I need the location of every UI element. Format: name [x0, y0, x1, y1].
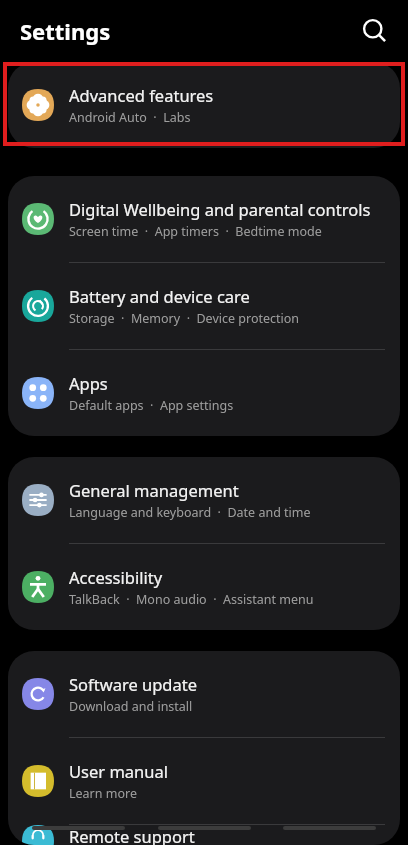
- staticText: Android Auto · Labs: [69, 109, 191, 126]
- staticText: Digital Wellbeing and parental controls: [69, 198, 371, 220]
- button[interactable]: Digital Wellbeing and parental controls: [8, 176, 400, 263]
- staticText: TalkBack · Mono audio · Assistant menu: [69, 591, 314, 608]
- button[interactable]: Software update: [8, 651, 400, 738]
- staticText: Storage · Memory · Device protection: [69, 310, 300, 327]
- button[interactable]: Remote support: [8, 825, 400, 845]
- staticText: Advanced features: [69, 84, 214, 106]
- button[interactable]: Navigation: [32, 826, 125, 830]
- staticText: Battery and device care: [69, 285, 250, 307]
- button[interactable]: General management: [8, 457, 400, 544]
- button[interactable]: User manual: [8, 738, 400, 825]
- staticText: Language and keyboard · Date and time: [69, 504, 311, 521]
- staticText: General management: [69, 479, 239, 501]
- button[interactable]: Apps: [8, 350, 400, 436]
- staticText: Software update: [69, 673, 197, 695]
- staticText: Remote support: [69, 825, 195, 845]
- staticText: Learn more: [69, 785, 137, 802]
- button[interactable]: Battery and device care: [8, 263, 400, 350]
- staticText: Accessibility: [69, 566, 163, 588]
- staticText: User manual: [69, 760, 168, 782]
- button[interactable]: Accessibility: [8, 544, 400, 630]
- staticText: Download and install: [69, 698, 193, 715]
- staticText: Apps: [69, 372, 108, 394]
- staticText: Default apps · App settings: [69, 397, 234, 414]
- button[interactable]: Search: [359, 15, 391, 47]
- staticText: Screen time · App timers · Bedtime mode: [69, 223, 322, 240]
- button[interactable]: Advanced features: [8, 62, 400, 148]
- staticText: Settings: [20, 16, 111, 46]
